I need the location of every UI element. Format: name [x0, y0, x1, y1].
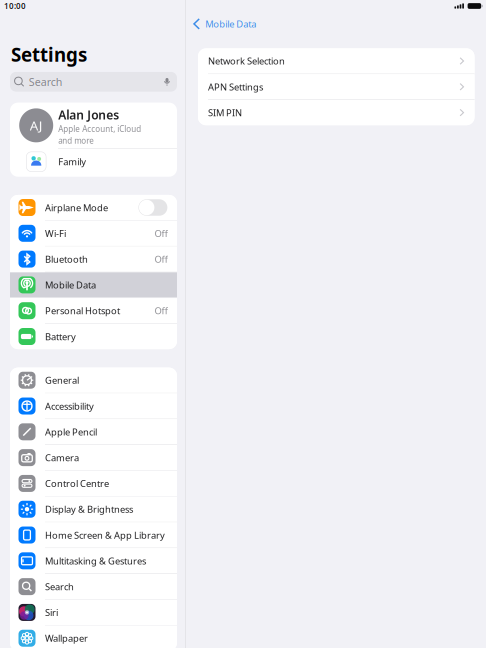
staticText: Accessibility — [45, 400, 94, 412]
staticText: Siri — [45, 606, 58, 619]
staticText: Battery — [45, 330, 76, 343]
staticText: Mobile Data — [205, 18, 256, 30]
button[interactable]: Mobile Data — [186, 15, 256, 33]
staticText: Network Selection — [208, 55, 285, 67]
button[interactable]: Airplane Mode — [10, 195, 177, 220]
button[interactable]: Personal Hotspot — [10, 298, 177, 323]
staticText: Alan Jones — [58, 107, 119, 123]
staticText: Personal Hotspot — [45, 304, 120, 317]
button[interactable]: Siri — [10, 600, 177, 625]
staticText: Search — [45, 580, 74, 593]
staticText: SIM PIN — [208, 106, 242, 119]
staticText: General — [45, 374, 79, 386]
button[interactable]: Camera — [10, 445, 177, 470]
staticText: Apple Pencil — [45, 426, 97, 438]
staticText: Settings — [11, 42, 87, 67]
staticText: Multitasking & Gestures — [45, 555, 146, 567]
button[interactable]: Control Centre — [10, 471, 177, 496]
button[interactable]: SIM PIN — [198, 100, 474, 125]
button[interactable]: Wi-Fi — [10, 221, 177, 246]
button[interactable]: Wallpaper — [10, 626, 177, 648]
button[interactable]: Home Screen & App Library — [10, 522, 177, 548]
staticText: Off — [154, 304, 167, 317]
staticText: Wi-Fi — [45, 227, 66, 239]
staticText: Camera — [45, 451, 79, 464]
staticText: Search — [29, 75, 63, 89]
staticText: AJ — [30, 116, 43, 134]
staticText: Home Screen & App Library — [45, 529, 165, 541]
button[interactable]: Battery — [10, 324, 177, 349]
staticText: and more — [58, 135, 94, 146]
button[interactable]: Apple Pencil — [10, 419, 177, 444]
staticText: Control Centre — [45, 477, 109, 490]
button[interactable]: Display & Brightness — [10, 497, 177, 522]
staticText: Off — [154, 253, 167, 265]
staticText: 10:00 — [4, 0, 26, 11]
button[interactable]: Accessibility — [10, 393, 177, 419]
button[interactable]: Mobile Data — [10, 272, 177, 297]
button[interactable]: Bluetooth — [10, 246, 177, 272]
staticText: Mobile Data — [45, 279, 96, 291]
staticText: Bluetooth — [45, 253, 88, 265]
button[interactable]: APN Settings — [198, 74, 474, 99]
staticText: Family — [58, 155, 86, 168]
button[interactable]: Search — [10, 574, 177, 599]
button[interactable]: Network Selection — [198, 48, 474, 74]
staticText: APN Settings — [208, 81, 263, 93]
button[interactable]: Multitasking & Gestures — [10, 548, 177, 573]
staticText: Apple Account, iCloud — [58, 124, 141, 134]
staticText: Airplane Mode — [45, 201, 108, 214]
button[interactable]: General — [10, 368, 177, 393]
staticText: Wallpaper — [45, 632, 88, 644]
staticText: Display & Brightness — [45, 503, 133, 515]
button[interactable]: Family — [10, 149, 177, 177]
staticText: Off — [154, 227, 167, 239]
button[interactable]: AJ — [10, 103, 177, 148]
